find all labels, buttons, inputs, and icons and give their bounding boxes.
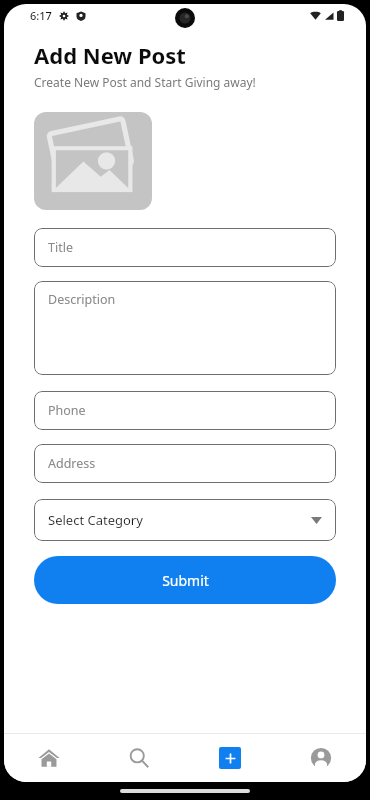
- staticText: Phone: [48, 402, 86, 419]
- button[interactable]: Profile: [275, 734, 366, 782]
- button[interactable]: Search: [94, 734, 184, 782]
- staticText: Description: [48, 291, 116, 308]
- button[interactable]: Description: [34, 281, 336, 375]
- button[interactable]: Pick image: [34, 112, 152, 210]
- button[interactable]: Add: [184, 734, 275, 782]
- button[interactable]: Address: [34, 444, 336, 483]
- button[interactable]: Select Category: [34, 499, 336, 541]
- button[interactable]: Phone: [34, 391, 336, 430]
- staticText: Address: [48, 455, 96, 472]
- staticText: 6:17: [30, 8, 52, 23]
- staticText: Submit: [162, 571, 209, 590]
- button[interactable]: Submit: [34, 556, 336, 604]
- staticText: Select Category: [48, 511, 143, 529]
- button[interactable]: Home: [4, 734, 94, 782]
- staticText: Title: [48, 239, 73, 256]
- button[interactable]: Title: [34, 228, 336, 267]
- staticText: Add New Post: [34, 40, 186, 70]
- staticText: Create New Post and Start Giving away!: [34, 74, 256, 90]
